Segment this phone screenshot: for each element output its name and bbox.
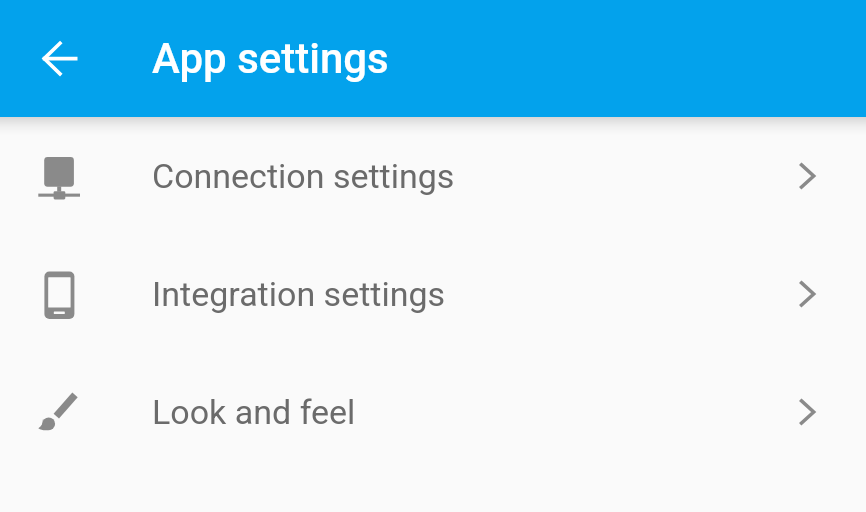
staticText: Integration settings xyxy=(152,274,446,314)
staticText: App settings xyxy=(152,34,389,83)
button[interactable]: Look and feel xyxy=(0,353,866,471)
staticText: Look and feel xyxy=(152,392,356,432)
button[interactable]: Navigate up xyxy=(24,0,95,117)
staticText: Connection settings xyxy=(152,156,455,196)
button[interactable]: Integration settings xyxy=(0,235,866,353)
button[interactable]: Connection settings xyxy=(0,117,866,235)
